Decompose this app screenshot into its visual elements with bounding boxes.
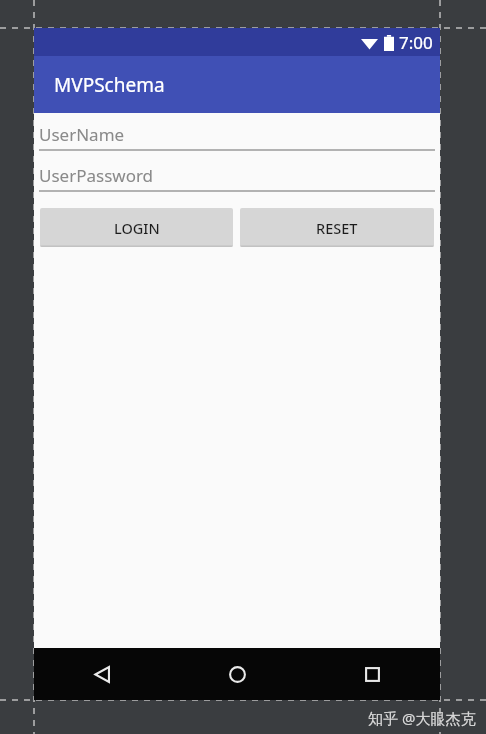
button[interactable]: LOGIN — [40, 208, 233, 247]
button[interactable]: UserName — [39, 119, 435, 149]
staticText: 知乎 @大眼杰克 — [368, 708, 476, 728]
button[interactable]: UserPassword — [39, 160, 435, 190]
staticText: 7:00 — [399, 31, 433, 54]
button[interactable]: RESET — [240, 208, 434, 247]
button[interactable]: Recent apps — [305, 648, 440, 700]
staticText: MVPSchema — [54, 72, 165, 98]
button[interactable]: Home — [170, 648, 305, 700]
staticText: RESET — [316, 218, 358, 238]
staticText: UserPassword — [39, 164, 154, 187]
staticText: LOGIN — [114, 218, 160, 238]
staticText: UserName — [39, 123, 125, 146]
button[interactable]: Back — [34, 648, 170, 700]
